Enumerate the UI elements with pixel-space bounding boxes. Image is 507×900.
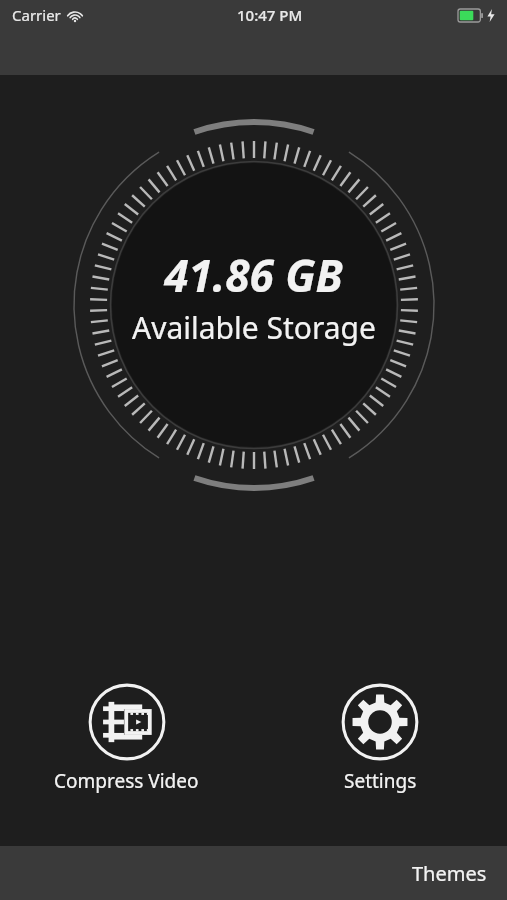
staticText: Available Storage — [132, 307, 376, 348]
button[interactable]: Settings — [328, 680, 432, 798]
staticText: Compress Video — [54, 768, 199, 794]
button[interactable]: Themes — [392, 848, 507, 899]
staticText: Themes — [412, 860, 487, 887]
staticText: Settings — [344, 768, 417, 794]
staticText: 10:47 PM — [237, 5, 303, 25]
button[interactable]: Compress Video — [40, 680, 213, 798]
staticText: Carrier — [12, 5, 61, 25]
staticText: 41.86 GB — [164, 245, 343, 305]
